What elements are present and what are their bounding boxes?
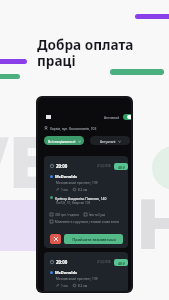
staticText: 300 грн / година xyxy=(55,213,79,217)
staticText: McDonalds xyxy=(55,174,77,179)
button[interactable]: Всі спеціальності xyxy=(44,136,84,145)
staticText: Кулінар Академіка Павлова, 140 xyxy=(55,196,107,200)
staticText: 1 км xyxy=(61,188,68,192)
button[interactable]: 20:00 xyxy=(44,156,128,248)
staticText: Актуальні xyxy=(100,139,116,143)
button[interactable]: Актуальні xyxy=(90,136,130,145)
staticText: 4ГОД 30ХВ xyxy=(97,260,111,264)
staticText: 8.2 км xyxy=(78,284,88,288)
staticText: Харків, вул. Космонавтів, 103 xyxy=(50,126,97,130)
staticText: Прийняти замовлення xyxy=(72,237,116,242)
staticText: 8.2 км xyxy=(78,188,88,192)
staticText: Активний xyxy=(104,115,120,119)
staticText: Московський проспект, 199 xyxy=(56,277,98,281)
staticText: Московський проспект, 199 xyxy=(56,181,98,185)
staticText: Можливість з друзями, готовий я мав знят… xyxy=(55,220,120,224)
staticText: Їжа та Сушi xyxy=(89,213,106,217)
staticText: Всі спеціальності xyxy=(48,139,76,143)
staticText: 40 ₴ xyxy=(118,261,125,265)
button[interactable]: 20:00 xyxy=(44,252,128,291)
staticText: Добра оплата праці xyxy=(37,35,134,70)
staticText: VE xyxy=(0,113,48,208)
button[interactable]: Toggle active xyxy=(123,114,131,120)
staticText: HO xyxy=(136,175,169,269)
staticText: 20:00 xyxy=(56,163,68,169)
staticText: McDonalds xyxy=(55,270,77,275)
staticText: 1 км xyxy=(61,284,68,288)
staticText: 4ГОД 30ХВ xyxy=(97,164,111,168)
button[interactable]: Прийняти замовлення xyxy=(64,234,123,244)
staticText: 40 ₴ xyxy=(118,165,125,169)
button[interactable]: Decline xyxy=(50,234,61,244)
staticText: 20:00 xyxy=(56,259,68,265)
staticText: Пн/Сб, 10, Квартал 103 xyxy=(56,201,91,205)
